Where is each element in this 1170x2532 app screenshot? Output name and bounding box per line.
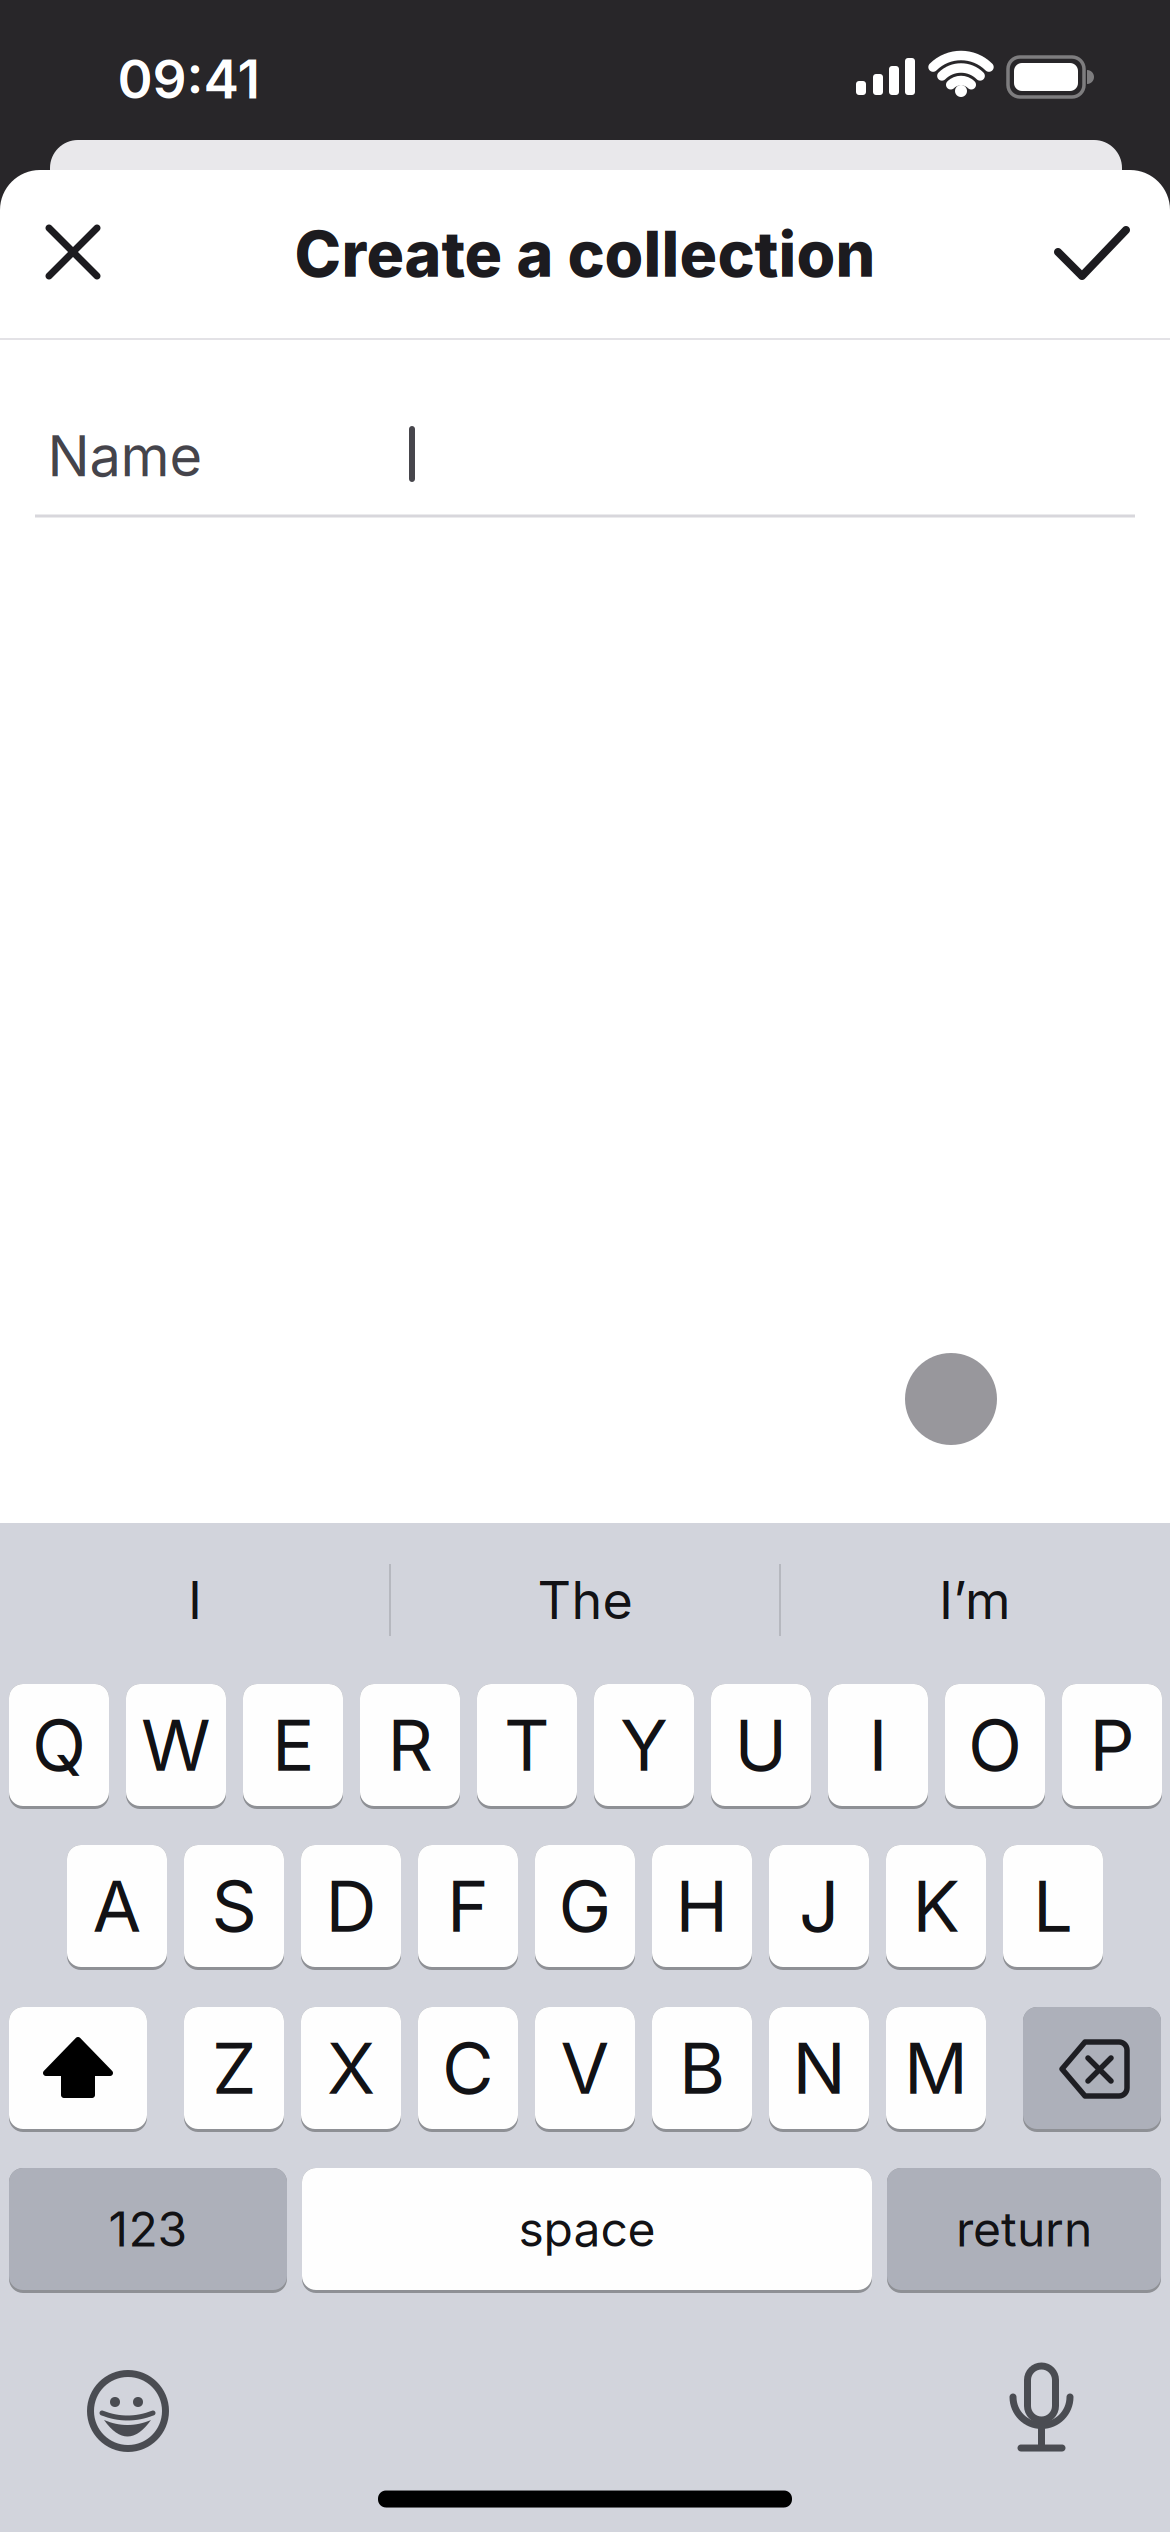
- staticText: G: [558, 1863, 611, 1949]
- staticText: 09:41: [117, 47, 260, 111]
- button[interactable]: G: [535, 1845, 635, 1967]
- staticText: I’m: [939, 1568, 1011, 1631]
- staticText: C: [442, 2025, 494, 2111]
- staticText: M: [904, 2025, 968, 2111]
- button[interactable]: Close: [25, 204, 121, 300]
- staticText: L: [1033, 1863, 1073, 1949]
- button[interactable]: H: [652, 1845, 752, 1967]
- button[interactable]: M: [886, 2007, 986, 2129]
- button[interactable]: The: [395, 1555, 775, 1645]
- staticText: Create a collection: [294, 216, 875, 292]
- button[interactable]: N: [769, 2007, 869, 2129]
- button[interactable]: Q: [9, 1684, 109, 1806]
- button[interactable]: W: [126, 1684, 226, 1806]
- button[interactable]: S: [184, 1845, 284, 1967]
- staticText: I: [868, 1702, 887, 1788]
- staticText: O: [968, 1702, 1022, 1788]
- button[interactable]: Numbers: [9, 2168, 287, 2290]
- button[interactable]: I: [828, 1684, 928, 1806]
- button[interactable]: Shift: [9, 2007, 147, 2129]
- button[interactable]: X: [301, 2007, 401, 2129]
- button[interactable]: Return: [887, 2168, 1161, 2290]
- button[interactable]: Z: [184, 2007, 284, 2129]
- staticText: F: [447, 1863, 489, 1949]
- button[interactable]: Done: [1043, 205, 1139, 301]
- button[interactable]: I: [5, 1555, 385, 1645]
- button[interactable]: Space: [302, 2168, 872, 2290]
- staticText: I: [188, 1568, 202, 1631]
- button[interactable]: B: [652, 2007, 752, 2129]
- button[interactable]: J: [769, 1845, 869, 1967]
- button[interactable]: I’m: [785, 1555, 1165, 1645]
- button[interactable]: E: [243, 1684, 343, 1806]
- staticText: Q: [32, 1702, 86, 1788]
- staticText: X: [327, 2025, 375, 2111]
- button[interactable]: C: [418, 2007, 518, 2129]
- button[interactable]: P: [1062, 1684, 1162, 1806]
- button[interactable]: R: [360, 1684, 460, 1806]
- button[interactable]: Delete: [1023, 2007, 1161, 2129]
- button[interactable]: U: [711, 1684, 811, 1806]
- staticText: return: [956, 2200, 1092, 2258]
- staticText: A: [92, 1863, 141, 1949]
- button[interactable]: F: [418, 1845, 518, 1967]
- staticText: J: [799, 1863, 839, 1949]
- button[interactable]: Emoji: [73, 2355, 183, 2465]
- staticText: Z: [212, 2025, 256, 2111]
- staticText: space: [518, 2200, 655, 2258]
- staticText: S: [211, 1863, 256, 1949]
- button[interactable]: O: [945, 1684, 1045, 1806]
- staticText: W: [141, 1702, 211, 1788]
- button[interactable]: D: [301, 1845, 401, 1967]
- button[interactable]: T: [477, 1684, 577, 1806]
- staticText: R: [387, 1702, 432, 1788]
- staticText: K: [912, 1863, 959, 1949]
- button[interactable]: K: [886, 1845, 986, 1967]
- button[interactable]: Dictation: [986, 2353, 1096, 2463]
- staticText: D: [325, 1863, 376, 1949]
- staticText: The: [537, 1568, 632, 1631]
- button[interactable]: V: [535, 2007, 635, 2129]
- staticText: B: [679, 2025, 725, 2111]
- staticText: Y: [620, 1702, 668, 1788]
- button[interactable]: A: [67, 1845, 167, 1967]
- staticText: E: [272, 1702, 314, 1788]
- staticText: V: [560, 2025, 609, 2111]
- staticText: Name: [47, 422, 202, 490]
- button[interactable]: Y: [594, 1684, 694, 1806]
- staticText: N: [792, 2025, 845, 2111]
- staticText: H: [675, 1863, 728, 1949]
- staticText: T: [504, 1702, 550, 1788]
- staticText: U: [734, 1702, 787, 1788]
- staticText: 123: [108, 2200, 187, 2258]
- staticText: P: [1089, 1702, 1134, 1788]
- button[interactable]: L: [1003, 1845, 1103, 1967]
